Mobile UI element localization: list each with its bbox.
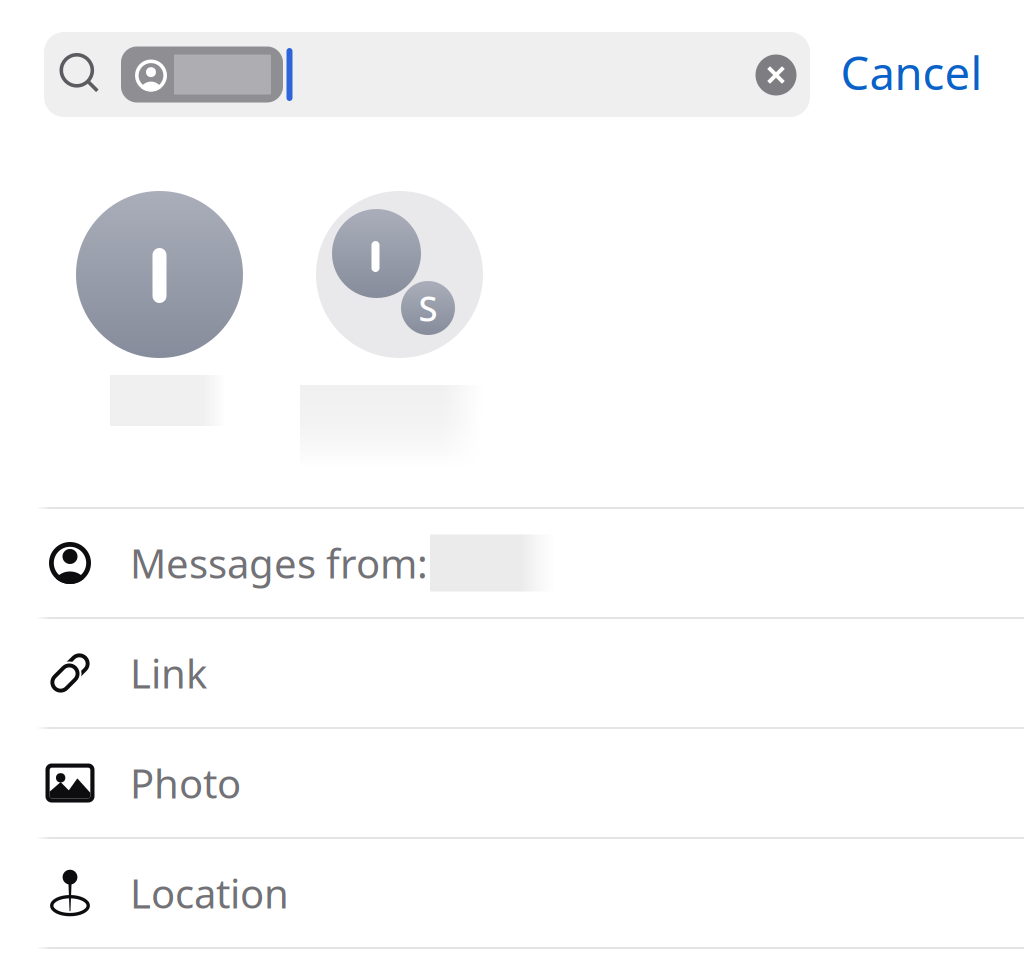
staticText: S bbox=[418, 285, 437, 331]
button[interactable] bbox=[76, 191, 276, 436]
staticText: Cancel bbox=[840, 42, 982, 103]
staticText: Link bbox=[130, 646, 207, 699]
button[interactable]: Clear search bbox=[741, 40, 811, 110]
button[interactable]: Cancel bbox=[811, 30, 1011, 115]
staticText: Location bbox=[130, 866, 289, 919]
button[interactable]: Location bbox=[0, 837, 1024, 947]
staticText: Photo bbox=[130, 756, 241, 809]
button[interactable]: Messages from: bbox=[0, 507, 1024, 617]
staticText: Messages from: bbox=[130, 536, 428, 589]
button[interactable]: S bbox=[316, 191, 516, 471]
button[interactable]: Link bbox=[0, 617, 1024, 727]
button[interactable]: Photo bbox=[0, 727, 1024, 837]
